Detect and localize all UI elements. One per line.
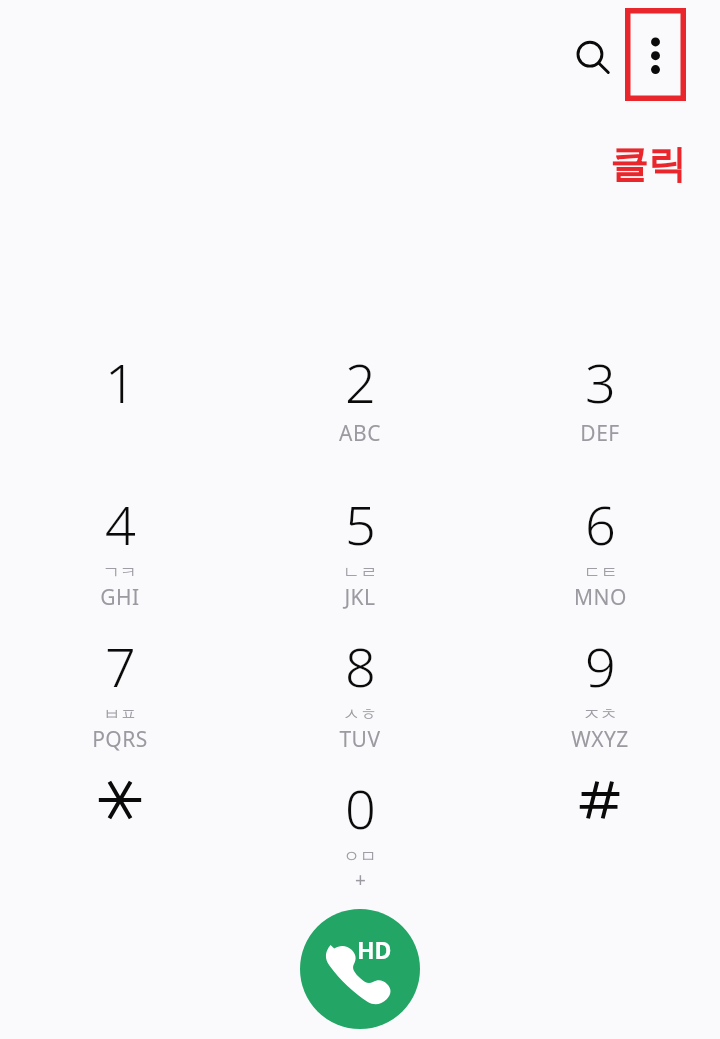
staticText: PQRS <box>92 725 148 754</box>
button[interactable]: 3 <box>480 345 720 487</box>
staticText: 6 <box>585 487 616 561</box>
staticText: 8 <box>345 629 376 703</box>
staticText: ㅇㅁ <box>343 846 377 867</box>
staticText: GHI <box>100 583 140 612</box>
staticText: 1 <box>105 345 136 419</box>
staticText: 3 <box>585 345 616 419</box>
staticText: 7 <box>105 629 136 703</box>
staticText: ABC <box>339 419 381 448</box>
staticText: 0 <box>345 771 376 845</box>
staticText: JKL <box>344 583 376 612</box>
button[interactable]: More options <box>625 8 686 101</box>
staticText: 클릭 <box>610 140 686 188</box>
button[interactable]: 6 <box>480 487 720 629</box>
staticText: DEF <box>580 419 620 448</box>
staticText: HD <box>357 934 392 965</box>
staticText: WXYZ <box>571 725 629 754</box>
staticText: 5 <box>345 487 376 561</box>
staticText: 2 <box>345 345 376 419</box>
staticText: ㄴㄹ <box>343 562 377 583</box>
button[interactable]: Call <box>300 909 420 1029</box>
staticText: ㅂㅍ <box>103 704 137 725</box>
staticText: + <box>355 867 366 893</box>
button[interactable]: Search <box>563 28 623 88</box>
button[interactable]: 9 <box>480 629 720 771</box>
button[interactable]: 2 <box>240 345 480 487</box>
staticText: TUV <box>339 725 381 754</box>
staticText: ㅈㅊ <box>583 704 617 725</box>
button[interactable]: 4 <box>0 487 240 629</box>
staticText: 9 <box>585 629 616 703</box>
staticText: ㅅㅎ <box>343 704 377 725</box>
staticText: ㄷㅌ <box>584 562 618 583</box>
button[interactable]: 1 <box>0 345 240 487</box>
staticText: ㄱㅋ <box>103 562 137 583</box>
button[interactable]: 7 <box>0 629 240 771</box>
button[interactable]: 5 <box>240 487 480 629</box>
button[interactable] <box>0 771 240 913</box>
staticText: 4 <box>105 487 136 561</box>
button[interactable]: 0 <box>240 771 480 913</box>
button[interactable]: 8 <box>240 629 480 771</box>
staticText: MNO <box>574 583 627 612</box>
button[interactable] <box>480 771 720 913</box>
